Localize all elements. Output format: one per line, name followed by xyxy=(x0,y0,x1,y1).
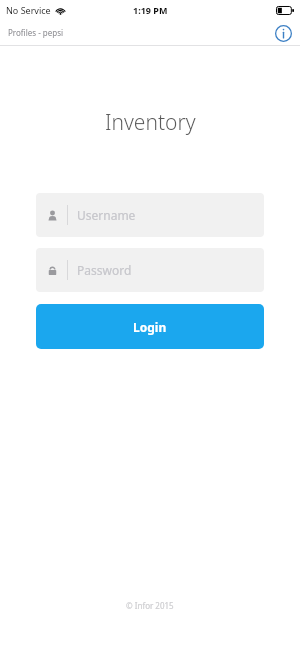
button[interactable]: Username xyxy=(36,193,264,237)
staticText: © Infor 2015 xyxy=(126,600,174,611)
staticText: Username xyxy=(77,207,136,223)
staticText: Password xyxy=(77,262,132,278)
button[interactable]: Profiles - pepsi xyxy=(0,23,72,42)
button[interactable]: Login xyxy=(36,304,264,349)
staticText: No Service xyxy=(6,4,51,16)
button[interactable]: Password xyxy=(36,248,264,292)
button[interactable]: Information xyxy=(272,22,294,44)
staticText: Profiles - pepsi xyxy=(8,27,64,38)
staticText: 1:19 PM xyxy=(133,4,168,16)
staticText: Inventory xyxy=(105,108,196,137)
staticText: Login xyxy=(133,319,167,335)
